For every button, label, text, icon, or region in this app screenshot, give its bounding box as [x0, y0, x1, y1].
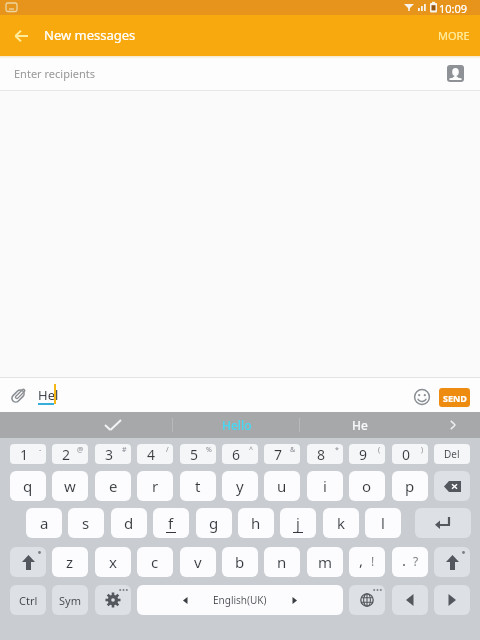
button[interactable]: s	[68, 508, 104, 538]
staticText: 3	[105, 445, 114, 464]
staticText: h	[251, 513, 261, 533]
button[interactable]: 7	[264, 444, 300, 464]
button[interactable]: 6	[222, 444, 258, 464]
button[interactable]: k	[323, 508, 359, 538]
button[interactable]: n	[264, 547, 300, 577]
button[interactable]: q	[10, 471, 46, 501]
button[interactable]: y	[222, 471, 258, 501]
staticText: )	[421, 445, 424, 455]
button[interactable]	[349, 585, 385, 615]
button[interactable]: j	[280, 508, 316, 538]
button[interactable]: 5	[180, 444, 216, 464]
button[interactable]	[434, 585, 470, 615]
button[interactable]: Sym	[52, 585, 88, 615]
button[interactable]: u	[264, 471, 300, 501]
button[interactable]: He	[320, 412, 400, 438]
staticText: -	[39, 445, 42, 455]
button[interactable]: h	[238, 508, 274, 538]
staticText: i	[323, 476, 327, 496]
button[interactable]	[434, 471, 470, 501]
staticText: p	[405, 476, 415, 496]
button[interactable]: English(UK)	[137, 585, 343, 615]
button[interactable]: 3	[95, 444, 131, 464]
button[interactable]: x	[95, 547, 131, 577]
button[interactable]	[438, 412, 468, 438]
button[interactable]: 4	[137, 444, 173, 464]
staticText: 8	[317, 445, 326, 464]
button[interactable]: i	[307, 471, 343, 501]
staticText: Ctrl	[19, 593, 38, 608]
button[interactable]: l	[365, 508, 401, 538]
button[interactable]: p	[392, 471, 428, 501]
staticText: e	[109, 476, 118, 496]
button[interactable]: a	[26, 508, 62, 538]
staticText: Sym	[59, 593, 81, 608]
staticText: %	[206, 445, 212, 455]
button[interactable]: 9	[349, 444, 385, 464]
button[interactable]: 1	[10, 444, 46, 464]
staticText: English(UK)	[213, 593, 267, 607]
button[interactable]: f	[153, 508, 189, 538]
staticText: g	[209, 513, 219, 533]
button[interactable]: o	[349, 471, 385, 501]
button[interactable]: Enter recipients	[0, 56, 480, 90]
button[interactable]: g	[196, 508, 232, 538]
button[interactable]	[434, 547, 470, 577]
staticText: u	[277, 476, 287, 496]
staticText: a	[40, 513, 49, 533]
staticText: SEND	[443, 392, 467, 404]
button[interactable]: c	[137, 547, 173, 577]
staticText: /	[166, 445, 169, 455]
staticText: k	[337, 513, 346, 533]
button[interactable]: Ctrl	[10, 585, 46, 615]
button[interactable]	[407, 381, 437, 411]
staticText: Enter recipients	[14, 66, 95, 81]
staticText: o	[362, 476, 372, 496]
staticText: s	[82, 513, 90, 533]
staticText: q	[23, 476, 33, 496]
button[interactable]: ,	[349, 547, 385, 577]
staticText: Hello	[222, 417, 252, 433]
button[interactable]: d	[111, 508, 147, 538]
staticText: r	[152, 476, 159, 496]
button[interactable]: 0	[392, 444, 428, 464]
staticText: MORE	[438, 28, 470, 43]
button[interactable]	[415, 508, 471, 538]
staticText: 2	[62, 445, 71, 464]
staticText: !	[371, 553, 375, 569]
button[interactable]: e	[95, 471, 131, 501]
staticText: b	[235, 552, 245, 572]
staticText: w	[64, 476, 76, 496]
button[interactable]: SEND	[439, 388, 470, 407]
staticText: New messages	[44, 26, 136, 44]
button[interactable]: t	[180, 471, 216, 501]
staticText: 10:09	[439, 1, 468, 16]
staticText: Del	[444, 447, 460, 461]
button[interactable]: MORE	[438, 28, 470, 43]
button[interactable]: z	[52, 547, 88, 577]
button[interactable]	[85, 412, 141, 438]
button[interactable]: m	[307, 547, 343, 577]
button[interactable]: b	[222, 547, 258, 577]
button[interactable]	[10, 547, 46, 577]
staticText: (	[378, 445, 381, 455]
button[interactable]	[0, 15, 40, 56]
button[interactable]: v	[180, 547, 216, 577]
button[interactable]	[392, 585, 428, 615]
button[interactable]: .	[392, 547, 428, 577]
button[interactable]	[95, 585, 131, 615]
button[interactable]: Del	[434, 444, 470, 464]
button[interactable]: Hello	[197, 412, 277, 438]
staticText: *	[335, 445, 339, 455]
button[interactable]: w	[52, 471, 88, 501]
button[interactable]: 2	[52, 444, 88, 464]
staticText: f	[168, 513, 174, 533]
button[interactable]: 8	[307, 444, 343, 464]
staticText: c	[151, 552, 159, 572]
button[interactable]	[0, 378, 34, 412]
button[interactable]: r	[137, 471, 173, 501]
staticText: @	[77, 445, 84, 455]
staticText: d	[124, 513, 134, 533]
staticText: t	[195, 476, 201, 496]
staticText: 1	[20, 445, 29, 464]
